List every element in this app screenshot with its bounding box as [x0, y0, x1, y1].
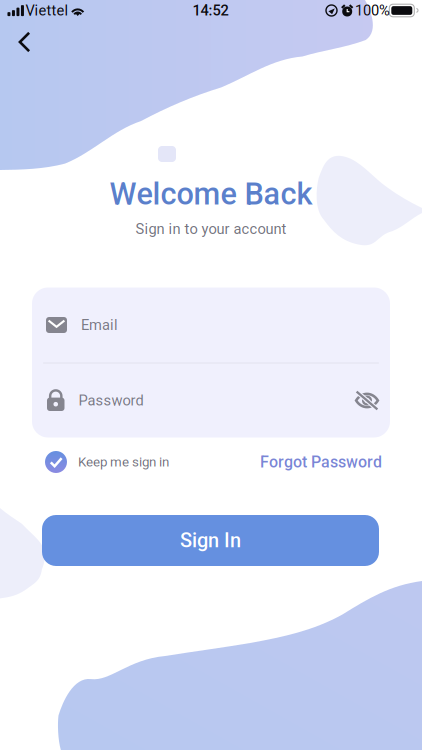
- staticText: Viettel: [25, 2, 68, 19]
- button[interactable]: Forgot Password: [256, 447, 386, 477]
- staticText: Sign in to your account: [135, 220, 286, 238]
- staticText: Welcome Back: [109, 176, 312, 212]
- button[interactable]: Show password: [350, 383, 384, 417]
- staticText: Password: [78, 392, 143, 409]
- staticText: Email: [81, 316, 118, 334]
- button[interactable]: Back: [2, 20, 46, 64]
- staticText: Sign In: [180, 529, 241, 552]
- staticText: Forgot Password: [260, 453, 382, 471]
- staticText: 100%: [355, 2, 390, 19]
- button[interactable]: Sign In: [42, 515, 379, 566]
- button[interactable]: Keep me sign in: [45, 445, 169, 479]
- staticText: 14:52: [192, 2, 228, 19]
- staticText: Keep me sign in: [78, 454, 169, 470]
